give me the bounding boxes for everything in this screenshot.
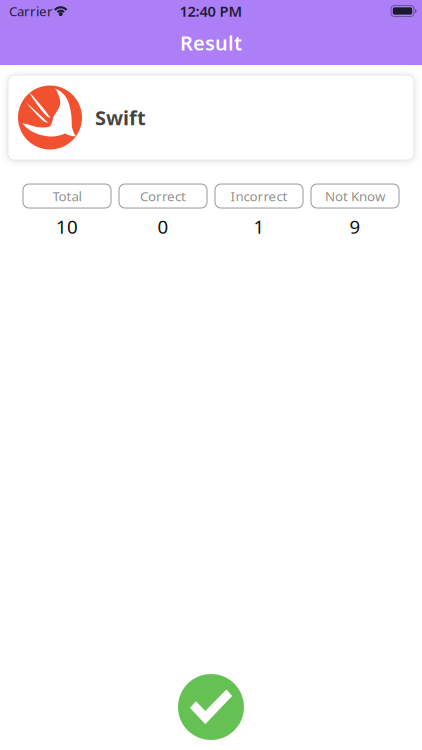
staticText: Not Know [325, 187, 385, 205]
button[interactable]: Done [178, 674, 244, 740]
staticText: 0 [157, 214, 168, 239]
staticText: 9 [349, 214, 360, 239]
staticText: Carrier [9, 2, 53, 20]
staticText: Incorrect [230, 187, 287, 205]
staticText: Correct [140, 187, 186, 205]
staticText: Result [180, 29, 242, 56]
staticText: 10 [56, 214, 78, 239]
staticText: Total [52, 187, 81, 205]
staticText: 12:40 PM [179, 1, 242, 21]
staticText: Swift [95, 104, 146, 131]
staticText: 1 [253, 214, 264, 239]
